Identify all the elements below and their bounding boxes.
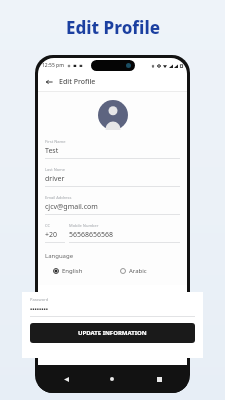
staticText: UPDATE INFORMATION — [78, 329, 147, 337]
staticText: Last Name — [45, 167, 66, 172]
button[interactable]: English — [45, 267, 112, 275]
staticText: Language — [45, 252, 74, 260]
staticText: Edit Profile — [66, 16, 160, 39]
staticText: Edit Profile — [59, 77, 96, 87]
staticText: CC — [45, 223, 50, 228]
button[interactable]: Back — [60, 373, 72, 385]
staticText: +20 — [45, 230, 58, 240]
staticText: •••••••• — [30, 305, 49, 313]
staticText: Email Address — [45, 195, 72, 200]
button[interactable]: Recent apps — [153, 373, 165, 385]
staticText: cjcv@gmail.com — [45, 202, 98, 212]
staticText: 12:55 pm — [42, 62, 64, 69]
button[interactable]: UPDATE INFORMATION — [30, 323, 195, 343]
staticText: Arabic — [129, 267, 147, 275]
staticText: Password — [30, 297, 49, 302]
staticText: Mobile Number — [69, 223, 99, 228]
staticText: First Name — [45, 139, 66, 144]
staticText: Test — [45, 146, 59, 156]
button[interactable]: Back — [43, 76, 55, 88]
button[interactable]: Arabic — [112, 267, 180, 275]
button[interactable]: Home — [106, 373, 118, 385]
staticText: 56568656568 — [69, 230, 114, 240]
staticText: English — [62, 267, 83, 275]
staticText: driver — [45, 174, 65, 184]
